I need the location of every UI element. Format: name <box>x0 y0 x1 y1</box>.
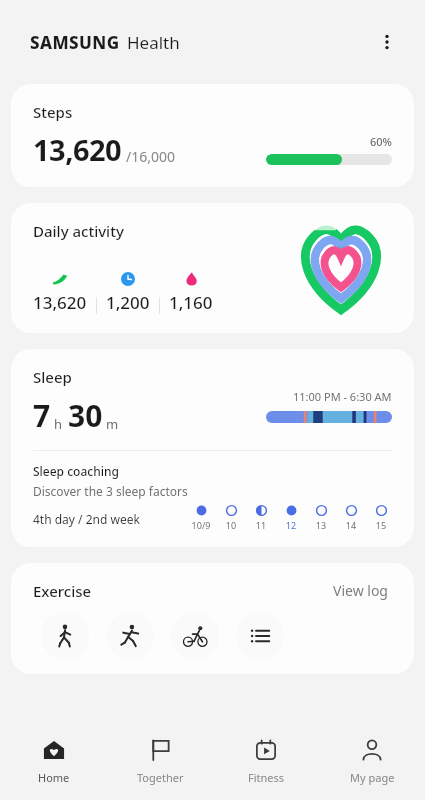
staticText: Steps <box>33 102 73 122</box>
staticText: 1,200 <box>106 291 150 314</box>
staticText: 13,620 <box>33 130 122 169</box>
button[interactable]: Steps <box>11 84 414 187</box>
staticText: 10/9 <box>190 519 212 531</box>
staticText: 1,160 <box>169 291 213 314</box>
staticText: 11 <box>250 519 272 531</box>
button[interactable]: View log <box>329 579 392 602</box>
staticText: 11:00 PM - 6:30 AM <box>293 389 392 404</box>
staticText: Exercise <box>33 581 92 601</box>
staticText: 4th day / 2nd week <box>33 511 140 527</box>
staticText: 14 <box>340 519 362 531</box>
staticText: 7 <box>33 395 51 436</box>
staticText: Daily activity <box>33 221 124 241</box>
staticText: m <box>106 415 119 433</box>
button[interactable]: Daily activity <box>11 203 414 333</box>
staticText: Health <box>127 31 180 54</box>
staticText: 60% <box>370 134 392 149</box>
button[interactable]: Sleep <box>11 349 414 547</box>
button[interactable]: Exercise <box>11 563 414 674</box>
staticText: 12 <box>280 519 302 531</box>
button[interactable]: Home <box>0 722 107 800</box>
staticText: Fitness <box>248 770 285 785</box>
staticText: Sleep coaching <box>33 463 119 479</box>
button[interactable]: Cycling <box>171 612 219 660</box>
staticText: 13 <box>310 519 332 531</box>
button[interactable]: Together <box>107 722 213 800</box>
staticText: /16,000 <box>126 147 175 166</box>
staticText: 15 <box>370 519 392 531</box>
button[interactable]: Fitness <box>213 722 319 800</box>
staticText: My page <box>350 770 395 785</box>
button[interactable]: More exercises <box>236 612 284 660</box>
button[interactable]: Running <box>106 612 154 660</box>
staticText: 30 <box>68 395 103 436</box>
staticText: Sleep <box>33 367 72 387</box>
staticText: Discover the 3 sleep factors <box>33 483 188 499</box>
button[interactable]: More options <box>367 22 407 62</box>
button[interactable]: My page <box>319 722 425 800</box>
staticText: View log <box>333 581 388 600</box>
staticText: SAMSUNG <box>30 31 120 54</box>
button[interactable]: Walking <box>41 612 89 660</box>
staticText: Home <box>38 770 70 785</box>
staticText: 13,620 <box>33 291 87 314</box>
staticText: Together <box>137 770 184 785</box>
staticText: h <box>54 415 63 433</box>
staticText: 10 <box>220 519 242 531</box>
